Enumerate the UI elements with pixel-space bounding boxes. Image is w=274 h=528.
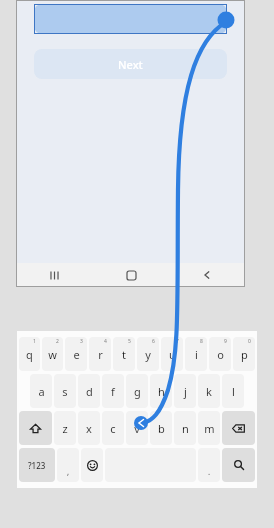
- button[interactable]: u: [161, 337, 183, 371]
- button[interactable]: k: [198, 374, 220, 408]
- staticText: z: [62, 421, 68, 436]
- button[interactable]: ,: [57, 448, 79, 482]
- button[interactable]: a: [30, 374, 52, 408]
- staticText: x: [86, 421, 92, 436]
- staticText: j: [184, 384, 187, 399]
- staticText: c: [110, 421, 116, 436]
- staticText: l: [232, 384, 235, 399]
- staticText: t: [122, 347, 126, 362]
- staticText: 8: [200, 338, 203, 345]
- button[interactable]: Backspace: [222, 411, 255, 445]
- button[interactable]: p: [233, 337, 255, 371]
- staticText: 9: [224, 338, 227, 345]
- staticText: m: [204, 421, 215, 436]
- button[interactable]: l: [222, 374, 244, 408]
- button[interactable]: Emoji: [81, 448, 103, 482]
- staticText: 3: [80, 338, 83, 345]
- staticText: 6: [152, 338, 155, 345]
- staticText: e: [73, 347, 80, 362]
- staticText: s: [62, 384, 68, 399]
- staticText: 4: [104, 338, 107, 345]
- button[interactable]: d: [78, 374, 100, 408]
- staticText: v: [134, 421, 140, 436]
- button[interactable]: e: [65, 337, 87, 371]
- staticText: 1: [33, 338, 36, 345]
- button[interactable]: [34, 4, 227, 34]
- button[interactable]: m: [198, 411, 220, 445]
- button[interactable]: j: [174, 374, 196, 408]
- button[interactable]: z: [54, 411, 76, 445]
- staticText: d: [86, 384, 93, 399]
- staticText: b: [158, 421, 165, 436]
- button[interactable]: x: [78, 411, 100, 445]
- button[interactable]: y: [137, 337, 159, 371]
- button[interactable]: n: [174, 411, 196, 445]
- button[interactable]: q: [19, 337, 40, 371]
- staticText: y: [145, 347, 151, 362]
- staticText: 5: [128, 338, 131, 345]
- button[interactable]: t: [113, 337, 135, 371]
- staticText: h: [158, 384, 165, 399]
- button[interactable]: v: [126, 411, 148, 445]
- button[interactable]: ?123: [19, 448, 55, 482]
- staticText: o: [217, 347, 224, 362]
- staticText: i: [195, 347, 198, 362]
- staticText: 7: [176, 338, 179, 345]
- button[interactable]: Back: [169, 263, 245, 287]
- staticText: r: [98, 347, 103, 362]
- button[interactable]: Home: [93, 263, 169, 287]
- button[interactable]: Next: [34, 49, 227, 79]
- staticText: 2: [56, 338, 59, 345]
- button[interactable]: w: [42, 337, 63, 371]
- button[interactable]: Recent apps: [16, 263, 93, 287]
- staticText: ?123: [28, 460, 46, 471]
- button[interactable]: s: [54, 374, 76, 408]
- button[interactable]: f: [102, 374, 124, 408]
- staticText: ,: [67, 466, 70, 477]
- staticText: n: [182, 421, 189, 436]
- button[interactable]: c: [102, 411, 124, 445]
- button[interactable]: Shift: [19, 411, 52, 445]
- button[interactable]: Search: [222, 448, 255, 482]
- button[interactable]: r: [89, 337, 111, 371]
- staticText: p: [241, 347, 248, 362]
- staticText: a: [38, 384, 45, 399]
- button[interactable]: o: [209, 337, 231, 371]
- staticText: w: [48, 347, 57, 362]
- button[interactable]: .: [198, 448, 220, 482]
- button[interactable]: h: [150, 374, 172, 408]
- staticText: f: [111, 384, 115, 399]
- staticText: g: [134, 384, 141, 399]
- staticText: q: [26, 347, 33, 362]
- button[interactable]: g: [126, 374, 148, 408]
- staticText: .: [208, 466, 211, 477]
- button[interactable]: b: [150, 411, 172, 445]
- staticText: k: [206, 384, 212, 399]
- button[interactable]: i: [185, 337, 207, 371]
- staticText: 0: [248, 338, 251, 345]
- staticText: u: [169, 347, 176, 362]
- staticText: Next: [118, 57, 143, 72]
